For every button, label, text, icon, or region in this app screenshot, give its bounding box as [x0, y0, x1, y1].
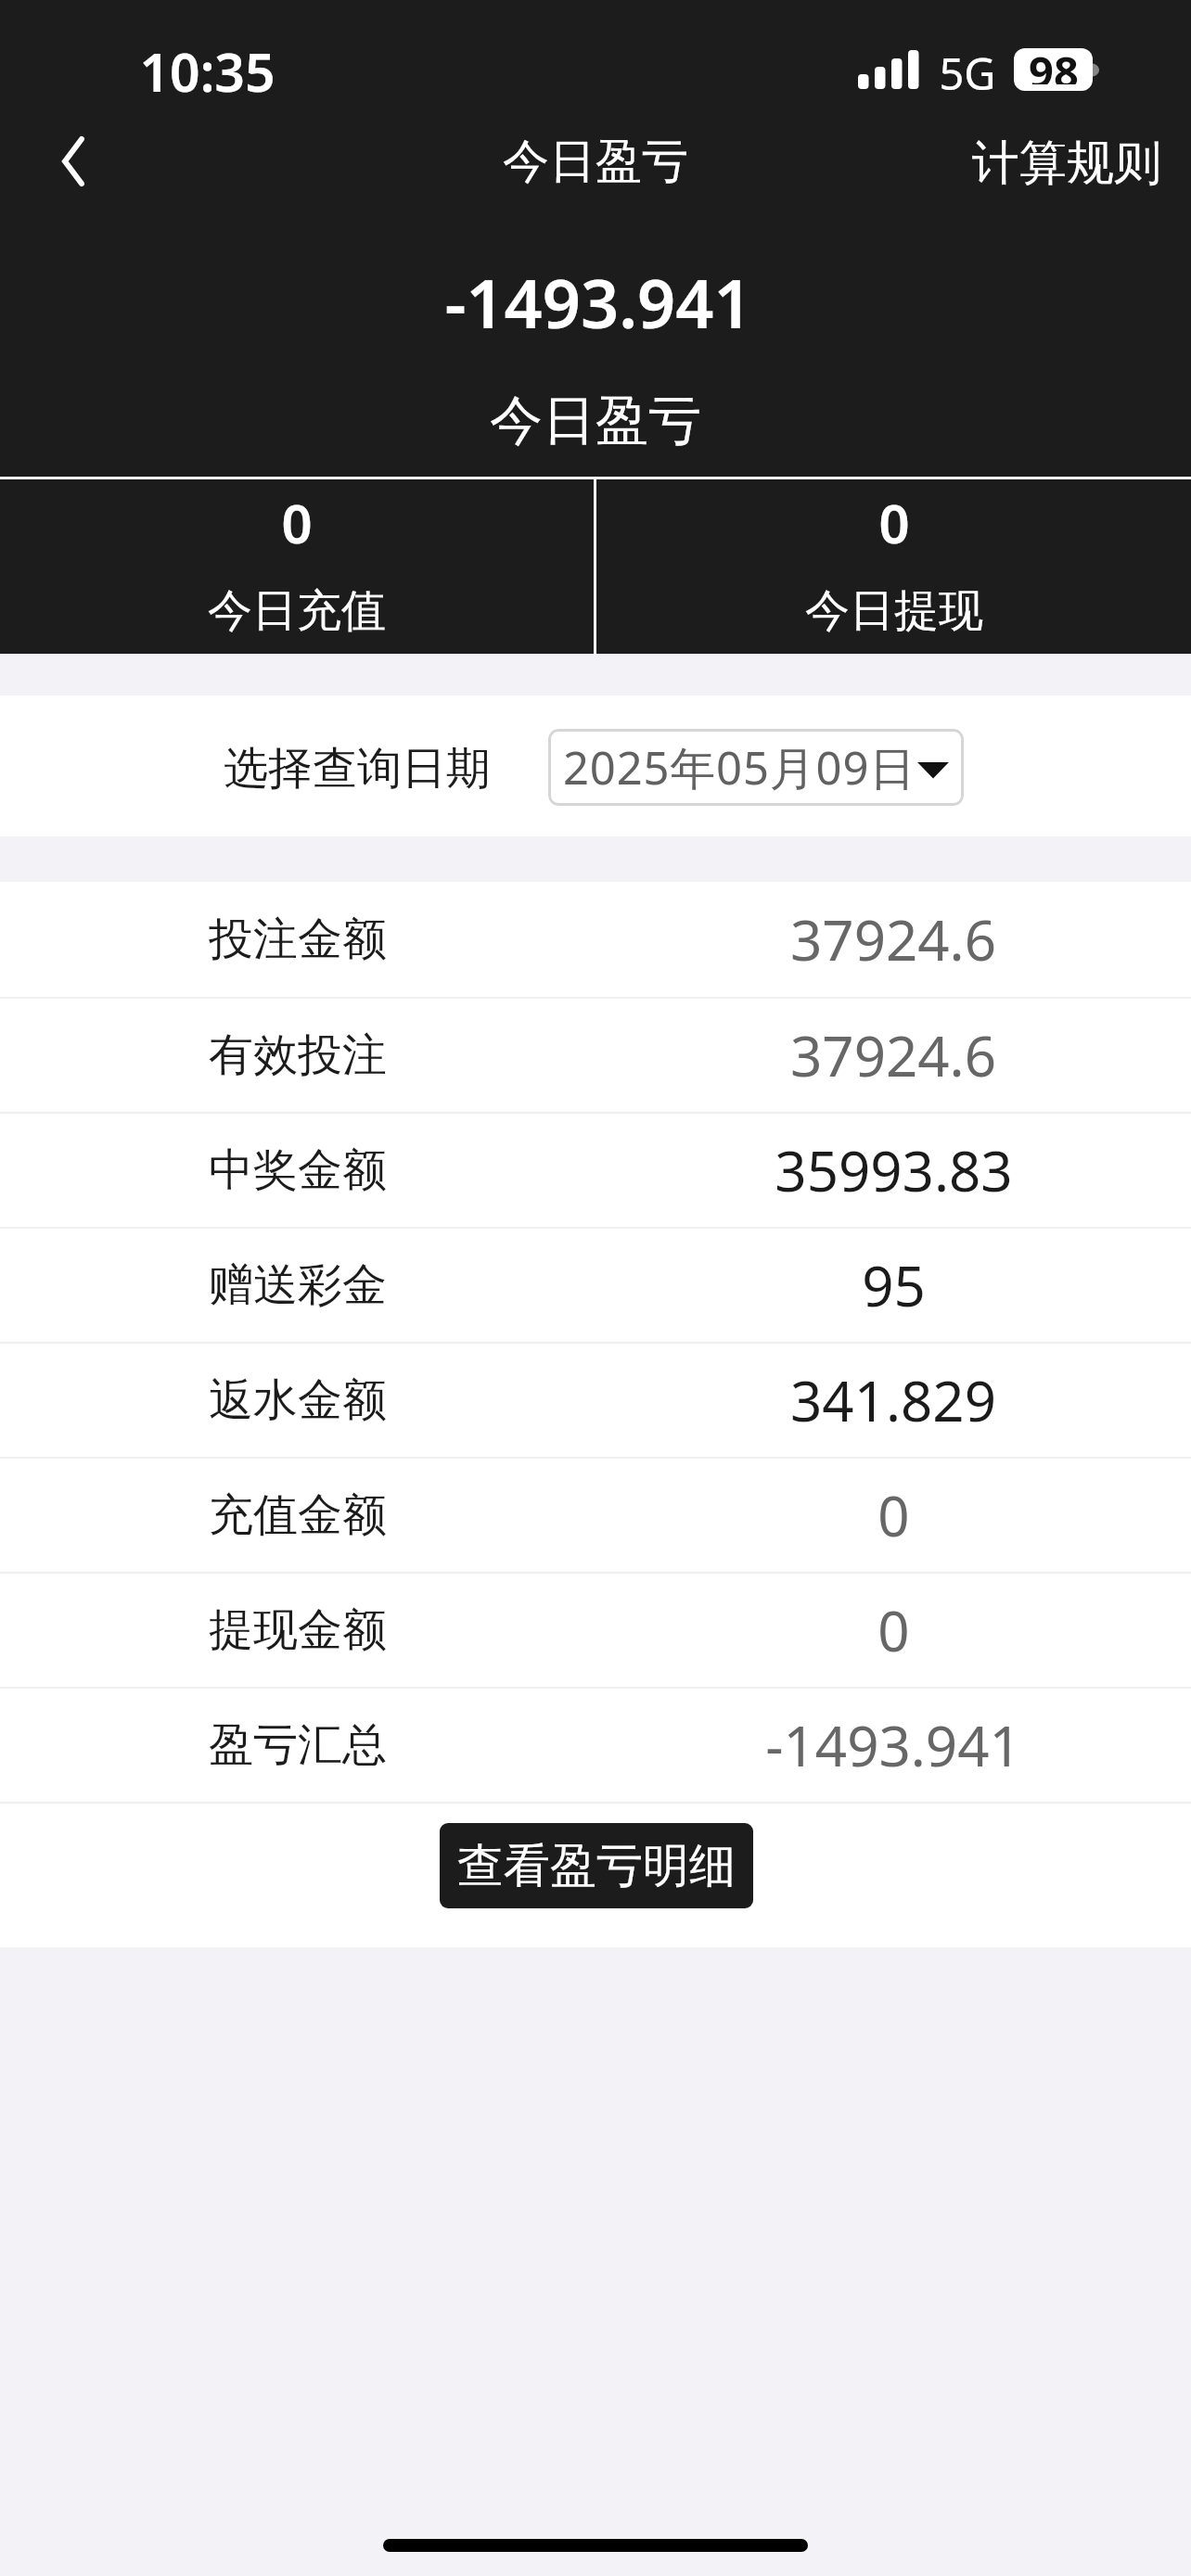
staticText: -1493.941 — [444, 257, 752, 348]
staticText: 今日盈亏 — [503, 133, 688, 191]
staticText: 盈亏汇总 — [209, 1717, 387, 1773]
staticText: 查看盈亏明细 — [457, 1837, 736, 1895]
staticText: 返水金额 — [209, 1372, 387, 1428]
staticText: 98 — [1029, 48, 1079, 84]
button[interactable]: Back — [40, 128, 107, 195]
button[interactable]: 计算规则 — [950, 121, 1191, 206]
staticText: 今日提现 — [805, 583, 983, 639]
staticText: 中奖金额 — [209, 1142, 387, 1198]
staticText: 今日充值 — [208, 583, 386, 639]
staticText: 0 — [877, 1477, 910, 1553]
staticText: 95 — [862, 1247, 926, 1323]
staticText: 赠送彩金 — [209, 1257, 387, 1313]
staticText: 37924.6 — [790, 901, 996, 977]
button[interactable]: 查看盈亏明细 — [440, 1823, 753, 1908]
staticText: 充值金额 — [209, 1487, 387, 1543]
staticText: 0 — [878, 486, 910, 559]
staticText: 今日盈亏 — [490, 388, 701, 454]
staticText: -1493.941 — [765, 1707, 1021, 1783]
staticText: 2025年05月09日 — [563, 736, 916, 798]
staticText: 341.829 — [790, 1362, 996, 1438]
staticText: 0 — [877, 1592, 910, 1668]
staticText: 10:35 — [139, 35, 275, 108]
staticText: 35993.83 — [775, 1132, 1013, 1208]
staticText: 37924.6 — [790, 1017, 996, 1093]
staticText: 计算规则 — [972, 134, 1161, 193]
staticText: 有效投注 — [209, 1027, 387, 1083]
staticText: 5G — [939, 44, 996, 103]
staticText: 0 — [281, 486, 313, 559]
staticText: 提现金额 — [209, 1602, 387, 1658]
staticText: 投注金额 — [209, 912, 387, 967]
staticText: 选择查询日期 — [224, 741, 491, 797]
button[interactable]: 选择查询日期 — [548, 729, 964, 806]
